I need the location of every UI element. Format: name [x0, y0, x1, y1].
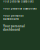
staticText: Your personal dashboard	[3, 0, 34, 3]
staticText: Your personal dashboard	[3, 25, 25, 31]
staticText: Your personal dashboard	[3, 14, 24, 21]
staticText: Your personal dashboard	[3, 7, 37, 10]
